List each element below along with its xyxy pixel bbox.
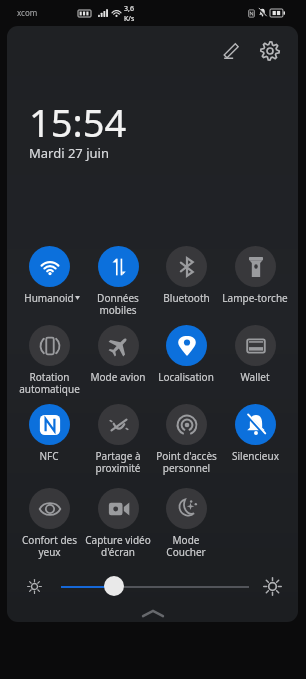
staticText: K/s [124,14,135,24]
button[interactable]: Humanoid [13,246,85,305]
button[interactable]: Lampe-torche [219,246,291,305]
button[interactable]: Bluetooth [150,246,222,305]
button[interactable]: Capture vidéo d'écran [82,488,154,559]
staticText: Bluetooth [163,291,210,305]
button[interactable]: Expand [143,610,163,617]
button[interactable]: Edit [212,32,250,70]
button[interactable]: Rotation automatique [13,325,85,396]
staticText: Mode Coucher [166,533,206,559]
staticText: Humanoid [24,291,74,305]
button[interactable]: Partage à proximité [82,404,154,475]
staticText: Point d'accès personnel [156,449,217,475]
staticText: Données mobiles [97,291,139,317]
button[interactable]: Données mobiles [82,246,154,317]
button[interactable]: Point d'accès personnel [150,404,222,475]
button[interactable]: Settings [250,31,289,70]
staticText: Localisation [158,370,214,384]
staticText: 15:54 [29,96,127,148]
button[interactable]: Mode avion [82,325,154,384]
button[interactable]: Silencieux [219,404,291,463]
button[interactable]: Mode Coucher [150,488,222,559]
staticText: Wallet [240,370,270,384]
staticText: Lampe-torche [222,291,288,305]
button[interactable]: Confort des yeux [13,488,85,559]
button[interactable]: Localisation [150,325,222,384]
staticText: Rotation automatique [19,370,80,396]
staticText: Capture vidéo d'écran [85,533,151,559]
button[interactable]: NFC [13,404,85,463]
staticText: Mode avion [90,370,146,384]
staticText: NFC [39,449,59,463]
button[interactable]: Wallet [219,325,291,384]
staticText: 3,6 [124,4,134,14]
button[interactable]: Brightness [104,576,124,596]
staticText: xcom [17,7,38,18]
staticText: Silencieux [232,449,279,463]
staticText: Confort des yeux [22,533,77,559]
staticText: Partage à proximité [95,449,141,475]
staticText: Mardi 27 juin [29,144,109,162]
